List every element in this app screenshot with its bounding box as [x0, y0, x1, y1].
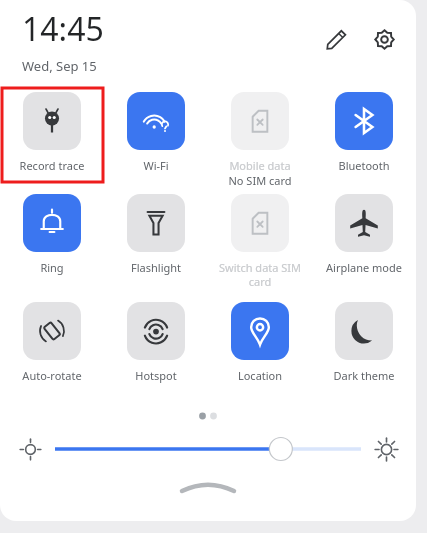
button[interactable]: Airplane mode: [313, 194, 415, 275]
staticText: Flashlight: [107, 260, 205, 275]
button[interactable]: Switch data SIM card: [209, 194, 311, 289]
staticText: Wed, Sep 15: [22, 57, 97, 75]
button[interactable]: Hotspot: [105, 302, 207, 383]
staticText: Ring: [3, 260, 101, 275]
button[interactable]: Bluetooth: [313, 92, 415, 173]
button[interactable]: Ring: [1, 194, 103, 275]
button[interactable]: Location: [209, 302, 311, 383]
button[interactable]: Dark theme: [313, 302, 415, 383]
button[interactable]: Auto-rotate: [1, 302, 103, 383]
button[interactable]: Settings: [366, 21, 402, 57]
button[interactable]: Mobile data: [209, 92, 311, 188]
button[interactable]: Wi-Fi: [105, 92, 207, 173]
staticText: Auto-rotate: [3, 368, 101, 383]
staticText: Hotspot: [107, 368, 205, 383]
staticText: Record trace: [3, 158, 101, 173]
button[interactable]: Flashlight: [105, 194, 207, 275]
staticText: Wi-Fi: [107, 158, 205, 173]
button[interactable]: Raise brightness: [369, 432, 403, 466]
button[interactable]: Brightness: [53, 434, 363, 464]
staticText: Dark theme: [315, 368, 413, 383]
staticText: 14:45: [22, 7, 104, 51]
staticText: Switch data SIM card: [211, 260, 309, 289]
staticText: Bluetooth: [315, 158, 413, 173]
staticText: Airplane mode: [315, 260, 413, 275]
staticText: Location: [211, 368, 309, 383]
staticText: Mobile data: [211, 158, 309, 173]
button[interactable]: Record trace: [1, 92, 103, 173]
button[interactable]: Edit tiles: [318, 21, 354, 57]
button[interactable]: Lower brightness: [13, 432, 47, 466]
staticText: No SIM card: [211, 173, 309, 188]
